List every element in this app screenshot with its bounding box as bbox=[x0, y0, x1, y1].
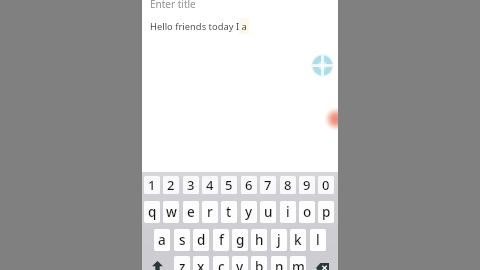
staticText: m bbox=[292, 258, 305, 270]
staticText: q bbox=[148, 203, 157, 221]
staticText: 7 bbox=[264, 176, 272, 194]
staticText: z bbox=[179, 258, 186, 270]
button[interactable]: o bbox=[299, 201, 315, 223]
staticText: n bbox=[275, 258, 284, 270]
button[interactable]: 4 bbox=[202, 176, 218, 194]
staticText: h bbox=[255, 231, 264, 249]
staticText: y bbox=[245, 203, 253, 221]
staticText: d bbox=[197, 231, 206, 249]
button[interactable]: Apps bbox=[311, 54, 334, 77]
button[interactable]: 2 bbox=[163, 176, 179, 194]
button[interactable]: q bbox=[144, 201, 160, 223]
button[interactable]: y bbox=[241, 201, 257, 223]
staticText: c bbox=[218, 258, 225, 270]
staticText: 9 bbox=[303, 176, 311, 194]
staticText: s bbox=[179, 231, 186, 249]
staticText: 1 bbox=[148, 176, 156, 194]
button[interactable]: i bbox=[280, 201, 296, 223]
staticText: r bbox=[207, 203, 213, 221]
staticText: u bbox=[264, 203, 273, 221]
staticText: 4 bbox=[206, 176, 214, 194]
staticText: 6 bbox=[245, 176, 253, 194]
staticText: e bbox=[187, 203, 195, 221]
staticText: w bbox=[166, 203, 177, 221]
button[interactable]: n bbox=[271, 256, 287, 270]
button[interactable]: d bbox=[193, 229, 209, 251]
button[interactable]: f bbox=[213, 229, 229, 251]
staticText: f bbox=[219, 231, 224, 249]
button[interactable]: c bbox=[213, 256, 229, 270]
staticText: 8 bbox=[284, 176, 292, 194]
staticText: p bbox=[322, 203, 331, 221]
button[interactable]: x bbox=[193, 256, 209, 270]
button[interactable]: Shift bbox=[149, 258, 165, 270]
staticText: 5 bbox=[225, 176, 233, 194]
button[interactable]: 8 bbox=[280, 176, 296, 194]
staticText: b bbox=[255, 258, 264, 270]
button[interactable]: Add note bbox=[324, 107, 338, 131]
staticText: v bbox=[236, 258, 244, 270]
button[interactable]: Backspace bbox=[314, 261, 330, 270]
staticText: i bbox=[286, 203, 290, 221]
button[interactable]: 9 bbox=[299, 176, 315, 194]
staticText: g bbox=[236, 231, 245, 249]
button[interactable]: r bbox=[202, 201, 218, 223]
staticText: 0 bbox=[322, 176, 330, 194]
staticText: Enter title bbox=[150, 0, 196, 11]
button[interactable]: w bbox=[163, 201, 179, 223]
button[interactable]: k bbox=[290, 229, 306, 251]
button[interactable]: p bbox=[318, 201, 334, 223]
button[interactable]: 0 bbox=[318, 176, 334, 194]
button[interactable]: g bbox=[232, 229, 248, 251]
button[interactable]: j bbox=[271, 229, 287, 251]
button[interactable]: e bbox=[183, 201, 199, 223]
staticText: a bbox=[158, 231, 166, 249]
button[interactable]: 6 bbox=[241, 176, 257, 194]
staticText: t bbox=[226, 203, 232, 221]
button[interactable]: t bbox=[221, 201, 237, 223]
button[interactable]: 3 bbox=[183, 176, 199, 194]
button[interactable]: z bbox=[174, 256, 190, 270]
button[interactable]: h bbox=[251, 229, 267, 251]
button[interactable]: u bbox=[260, 201, 276, 223]
staticText: Hello friends today I a bbox=[150, 20, 247, 33]
button[interactable]: 1 bbox=[144, 176, 160, 194]
staticText: x bbox=[197, 258, 205, 270]
staticText: 2 bbox=[167, 176, 175, 194]
staticText: 3 bbox=[187, 176, 195, 194]
button[interactable]: s bbox=[174, 229, 190, 251]
button[interactable]: l bbox=[310, 229, 326, 251]
staticText: k bbox=[294, 231, 302, 249]
button[interactable]: 5 bbox=[221, 176, 237, 194]
button[interactable]: b bbox=[251, 256, 267, 270]
staticText: j bbox=[277, 231, 281, 249]
button[interactable]: m bbox=[290, 256, 306, 270]
staticText: l bbox=[316, 231, 320, 249]
button[interactable]: v bbox=[232, 256, 248, 270]
staticText: o bbox=[303, 203, 312, 221]
button[interactable]: a bbox=[154, 229, 170, 251]
button[interactable]: 7 bbox=[260, 176, 276, 194]
